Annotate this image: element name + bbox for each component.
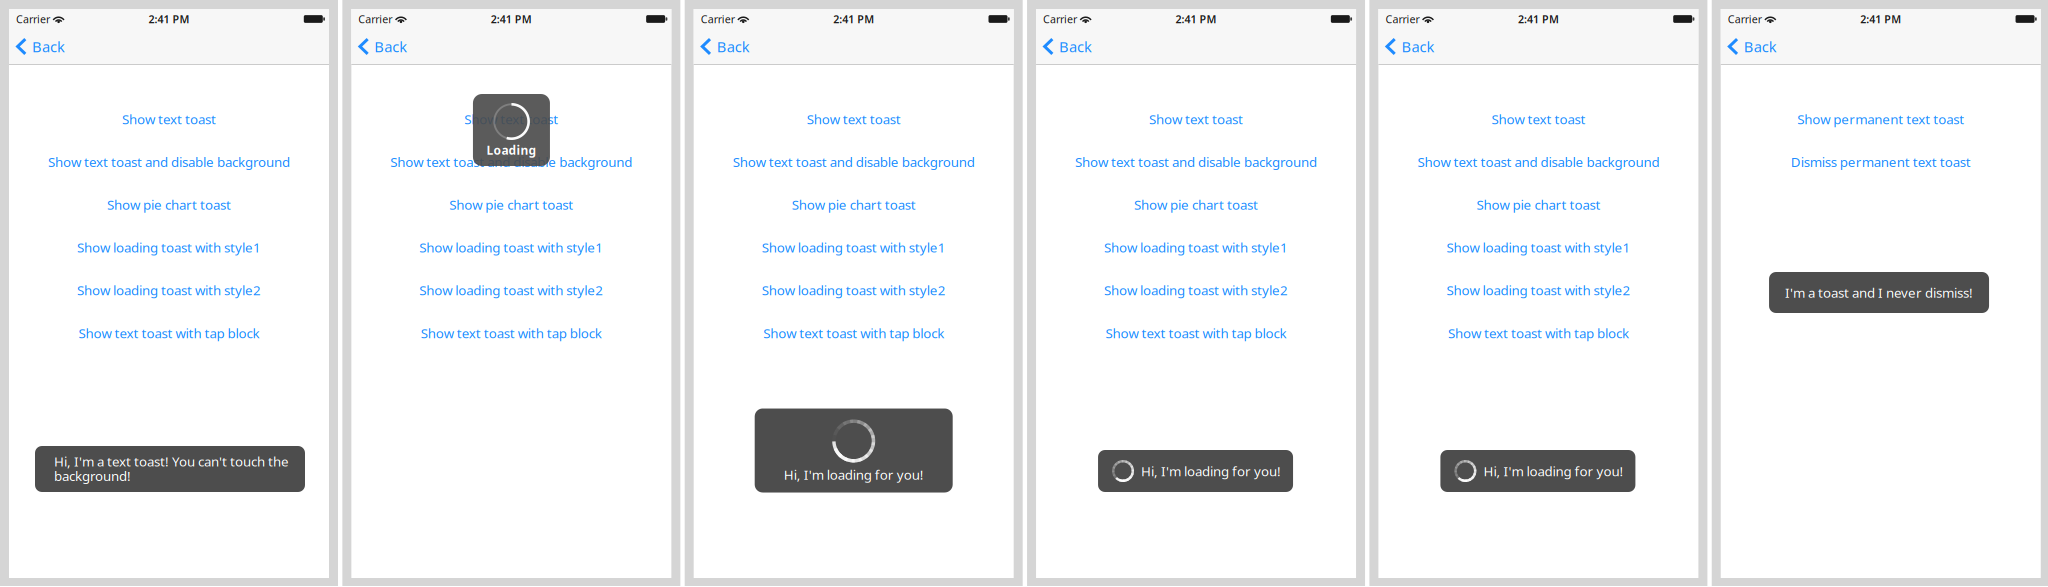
button[interactable]: Show loading toast with style1 xyxy=(9,226,329,269)
staticText: Hi, I'm a text toast! You can't touch th… xyxy=(54,452,289,470)
staticText: Show text toast with tap block xyxy=(763,324,944,342)
staticText: Show loading toast with style1 xyxy=(1446,238,1630,256)
staticText: Show text toast and disable background xyxy=(48,153,290,171)
staticText: Show text toast xyxy=(122,110,216,128)
button[interactable]: Show text toast and disable background xyxy=(9,140,329,183)
staticText: 2:41 PM xyxy=(833,12,874,26)
staticText: Back xyxy=(1059,37,1092,56)
staticText: Show text toast xyxy=(1491,110,1585,128)
button[interactable]: Back xyxy=(9,29,74,64)
button[interactable]: Show loading toast with style1 xyxy=(1378,226,1698,269)
button[interactable]: Show loading toast with style2 xyxy=(1036,269,1356,312)
button[interactable]: Show text toast and disable background xyxy=(1378,140,1698,183)
button[interactable]: Show pie chart toast xyxy=(351,183,671,226)
button[interactable]: Dismiss permanent text toast xyxy=(1721,140,2041,183)
staticText: Carrier xyxy=(16,12,50,26)
staticText: Show text toast with tap block xyxy=(1106,324,1287,342)
staticText: Hi, I'm loading for you! xyxy=(1141,462,1281,480)
button[interactable]: Show text toast xyxy=(351,98,671,140)
staticText: Back xyxy=(1401,37,1434,56)
button[interactable]: Show pie chart toast xyxy=(9,183,329,226)
staticText: Show pie chart toast xyxy=(1476,196,1600,213)
staticText: Show pie chart toast xyxy=(107,196,231,213)
button[interactable]: Show text toast xyxy=(1378,98,1698,140)
staticText: Back xyxy=(374,37,407,56)
staticText: Show text toast with tap block xyxy=(78,324,259,342)
staticText: Dismiss permanent text toast xyxy=(1791,153,1971,171)
staticText: Hi, I'm loading for you! xyxy=(784,466,924,483)
staticText: Carrier xyxy=(358,12,392,26)
button[interactable]: Show loading toast with style2 xyxy=(694,269,1014,312)
staticText: I'm a toast and I never dismiss! xyxy=(1785,284,1973,301)
staticText: Show loading toast with style1 xyxy=(77,238,261,256)
button[interactable]: Back xyxy=(1036,29,1101,64)
staticText: Show loading toast with style2 xyxy=(1104,281,1288,299)
staticText: Show loading toast with style2 xyxy=(762,281,946,299)
staticText: Show pie chart toast xyxy=(449,196,573,213)
staticText: Show text toast and disable background xyxy=(390,153,632,171)
staticText: 2:41 PM xyxy=(1518,12,1559,26)
staticText: Carrier xyxy=(1043,12,1077,26)
button[interactable]: Show text toast with tap block xyxy=(1036,312,1356,354)
button[interactable]: Show pie chart toast xyxy=(694,183,1014,226)
staticText: Show text toast xyxy=(464,110,558,128)
button[interactable]: Show text toast with tap block xyxy=(351,312,671,354)
staticText: Show loading toast with style1 xyxy=(1104,238,1288,256)
button[interactable]: Show text toast with tap block xyxy=(694,312,1014,354)
button[interactable]: Show loading toast with style2 xyxy=(9,269,329,312)
button[interactable]: Show loading toast with style2 xyxy=(1378,269,1698,312)
button[interactable]: Back xyxy=(1378,29,1443,64)
staticText: Loading xyxy=(486,142,536,158)
staticText: Show text toast and disable background xyxy=(1075,153,1317,171)
button[interactable]: Show text toast with tap block xyxy=(9,312,329,354)
staticText: Show permanent text toast xyxy=(1797,110,1964,128)
staticText: 2:41 PM xyxy=(148,12,189,26)
staticText: Show loading toast with style2 xyxy=(77,281,261,299)
staticText: Show loading toast with style1 xyxy=(762,238,946,256)
button[interactable]: Back xyxy=(351,29,416,64)
staticText: Show text toast and disable background xyxy=(733,153,975,171)
button[interactable]: Show text toast and disable background xyxy=(351,140,671,183)
button[interactable]: Back xyxy=(694,29,759,64)
staticText: Carrier xyxy=(1728,12,1762,26)
staticText: Show text toast and disable background xyxy=(1417,153,1659,171)
staticText: 2:41 PM xyxy=(1860,12,1901,26)
staticText: Back xyxy=(32,37,65,56)
button[interactable]: Show text toast and disable background xyxy=(694,140,1014,183)
button[interactable]: Show pie chart toast xyxy=(1036,183,1356,226)
staticText: 2:41 PM xyxy=(1176,12,1217,26)
button[interactable]: Show text toast xyxy=(9,98,329,140)
staticText: Carrier xyxy=(701,12,735,26)
button[interactable]: Show text toast xyxy=(1036,98,1356,140)
staticText: Show pie chart toast xyxy=(792,196,916,213)
button[interactable]: Show loading toast with style1 xyxy=(1036,226,1356,269)
button[interactable]: Show pie chart toast xyxy=(1378,183,1698,226)
button[interactable]: Back xyxy=(1721,29,1786,64)
staticText: 2:41 PM xyxy=(491,12,532,26)
staticText: Show loading toast with style2 xyxy=(1446,281,1630,299)
button[interactable]: Show text toast and disable background xyxy=(1036,140,1356,183)
staticText: Back xyxy=(717,37,750,56)
staticText: Show text toast xyxy=(807,110,901,128)
staticText: Show text toast with tap block xyxy=(1448,324,1629,342)
staticText: background! xyxy=(54,467,131,485)
button[interactable]: Show text toast xyxy=(694,98,1014,140)
staticText: Show loading toast with style1 xyxy=(419,238,603,256)
button[interactable]: Show text toast with tap block xyxy=(1378,312,1698,354)
staticText: Show loading toast with style2 xyxy=(419,281,603,299)
button[interactable]: Show loading toast with style1 xyxy=(351,226,671,269)
staticText: Carrier xyxy=(1385,12,1419,26)
button[interactable]: Show loading toast with style1 xyxy=(694,226,1014,269)
button[interactable]: Show loading toast with style2 xyxy=(351,269,671,312)
staticText: Show text toast xyxy=(1149,110,1243,128)
staticText: Hi, I'm loading for you! xyxy=(1483,462,1623,480)
staticText: Back xyxy=(1744,37,1777,56)
staticText: Show pie chart toast xyxy=(1134,196,1258,213)
staticText: Show text toast with tap block xyxy=(421,324,602,342)
button[interactable]: Show permanent text toast xyxy=(1721,98,2041,140)
